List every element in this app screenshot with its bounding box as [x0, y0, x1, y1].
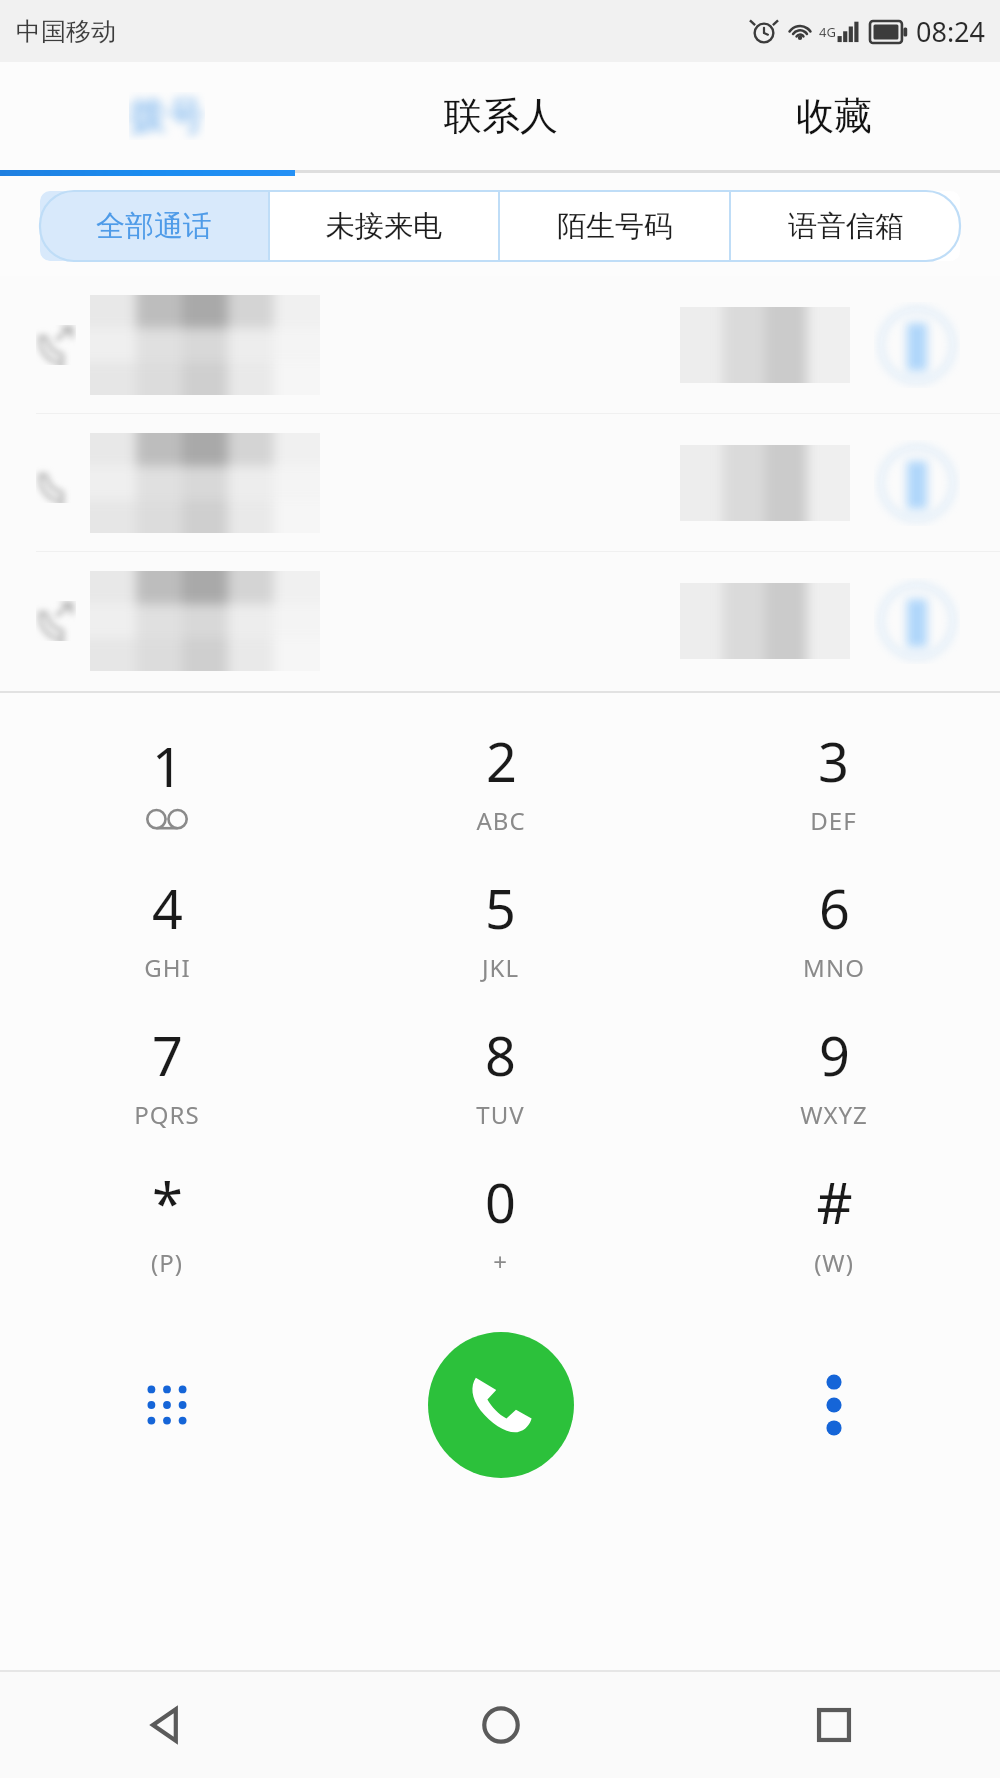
staticText: + — [493, 1245, 508, 1278]
button[interactable]: 未接来电 — [270, 191, 498, 261]
button[interactable]: Home — [334, 1672, 667, 1778]
button[interactable]: 9 — [667, 1001, 1000, 1148]
staticText: 陌生号码 — [557, 208, 673, 245]
button[interactable]: Call details — [0, 552, 1000, 689]
staticText: DEF — [810, 804, 857, 837]
staticText: 语音信箱 — [788, 208, 904, 245]
button[interactable]: 联系人 — [334, 62, 667, 170]
button[interactable]: 语音信箱 — [731, 191, 960, 261]
button[interactable]: Call — [428, 1332, 574, 1478]
button[interactable]: * — [0, 1148, 334, 1295]
button[interactable]: Call details — [874, 302, 960, 388]
staticText: 3 — [818, 724, 849, 798]
staticText: 1 — [152, 729, 183, 803]
staticText: 4 — [152, 871, 183, 945]
button[interactable]: 8 — [334, 1001, 667, 1148]
staticText: 2 — [486, 724, 517, 798]
button[interactable]: 3 — [667, 707, 1000, 854]
staticText: 全部通话 — [96, 208, 212, 245]
button[interactable]: Call details — [0, 414, 1000, 551]
button[interactable]: 收藏 — [667, 62, 1000, 170]
button[interactable]: More options — [667, 1295, 1000, 1515]
button[interactable]: 4 — [0, 854, 334, 1001]
staticText: 08:24 — [916, 13, 986, 50]
button[interactable]: Back — [0, 1672, 334, 1778]
staticText: * — [152, 1164, 183, 1240]
button[interactable]: 5 — [334, 854, 667, 1001]
button[interactable]: Call details — [874, 578, 960, 664]
staticText: 9 — [819, 1018, 850, 1092]
staticText: 7 — [152, 1018, 183, 1092]
button[interactable]: Recent apps — [667, 1672, 1000, 1778]
staticText: TUV — [476, 1098, 525, 1131]
button[interactable]: 全部通话 — [40, 191, 268, 261]
staticText: JKL — [482, 951, 519, 984]
staticText: 中国移动 — [16, 16, 116, 47]
staticText: (P) — [151, 1246, 183, 1279]
staticText: ABC — [476, 804, 526, 837]
staticText: 联系人 — [444, 92, 558, 140]
button[interactable]: 6 — [667, 854, 1000, 1001]
button[interactable]: 0 — [334, 1148, 667, 1295]
staticText: 5 — [485, 871, 516, 945]
button[interactable]: 7 — [0, 1001, 334, 1148]
button[interactable]: 2 — [334, 707, 667, 854]
staticText: GHI — [144, 951, 191, 984]
staticText: 收藏 — [796, 92, 872, 140]
staticText: 未接来电 — [326, 208, 442, 245]
button[interactable]: Call details — [0, 276, 1000, 413]
button[interactable]: 拨号 — [0, 62, 334, 170]
button[interactable]: # — [667, 1148, 1000, 1295]
staticText: (W) — [814, 1246, 854, 1279]
staticText: 4G — [819, 23, 836, 41]
button[interactable]: Hide dialpad — [0, 1295, 334, 1515]
staticText: 6 — [819, 871, 850, 945]
button[interactable]: 陌生号码 — [500, 191, 729, 261]
staticText: WXYZ — [800, 1098, 868, 1131]
button[interactable]: Call details — [874, 440, 960, 526]
staticText: MNO — [803, 951, 865, 984]
button[interactable]: 1 — [0, 707, 334, 854]
staticText: 拨号 — [129, 92, 205, 140]
staticText: # — [816, 1164, 853, 1240]
staticText: PQRS — [134, 1098, 200, 1131]
staticText: 8 — [485, 1018, 516, 1092]
staticText: 0 — [485, 1165, 516, 1239]
